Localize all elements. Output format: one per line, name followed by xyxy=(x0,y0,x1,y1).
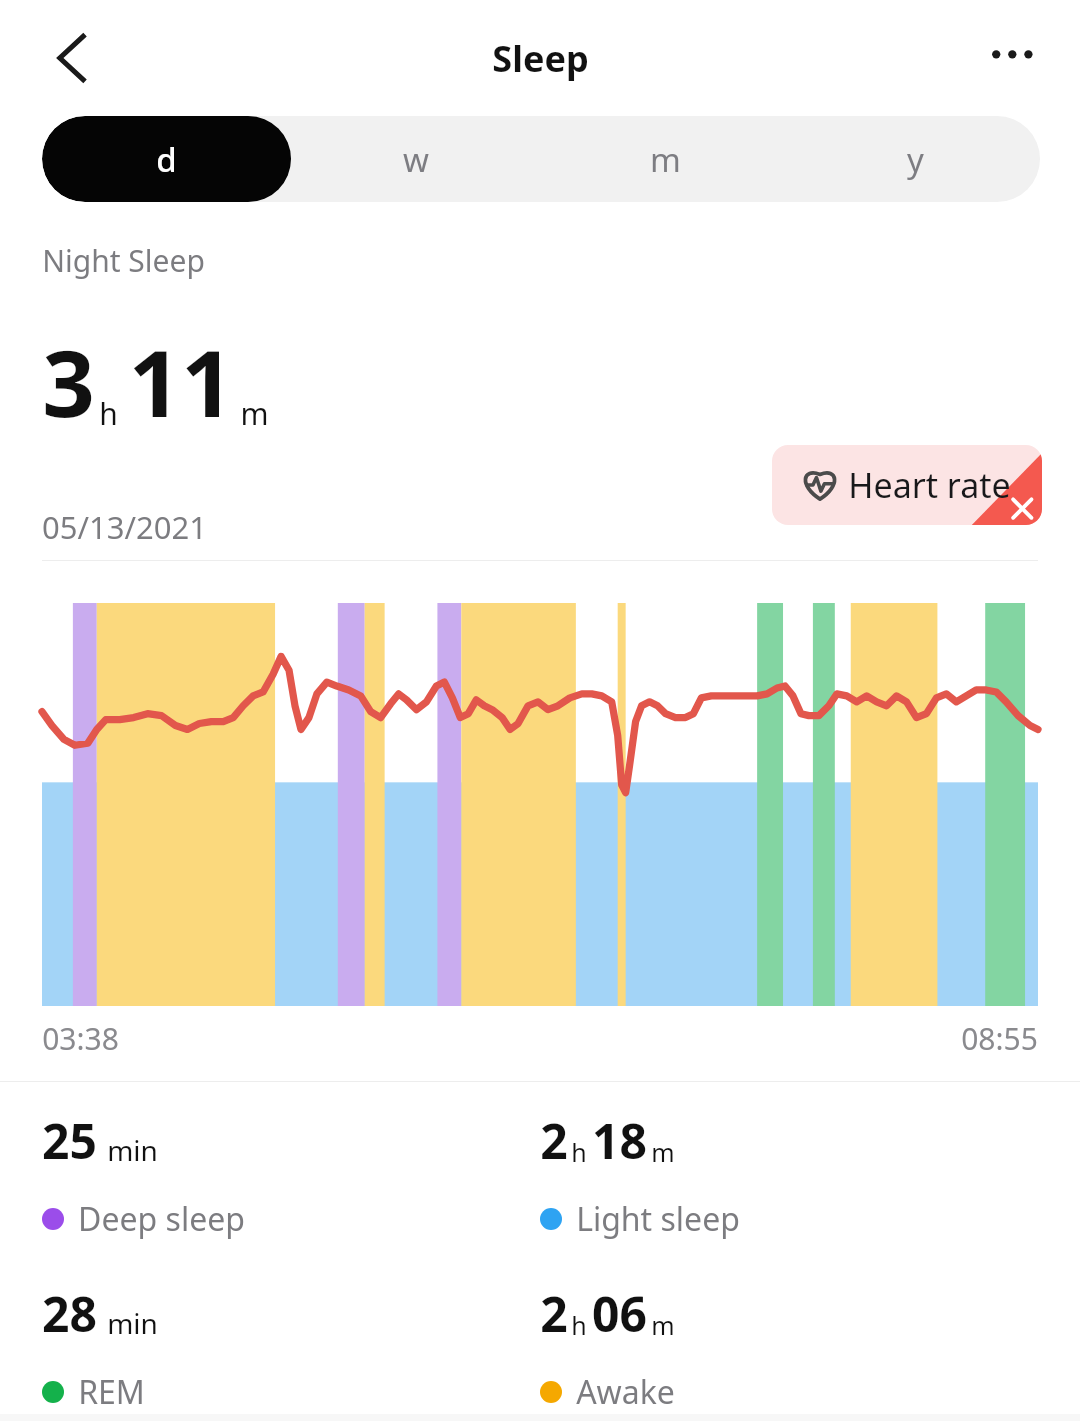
staticText: Heart rate xyxy=(848,462,1011,508)
button[interactable]: w xyxy=(291,116,540,202)
staticText: m xyxy=(240,393,269,434)
staticText: 3 xyxy=(42,319,95,444)
staticText: h xyxy=(99,393,118,434)
staticText: w xyxy=(403,137,429,182)
button[interactable]: 28 xyxy=(42,1281,540,1414)
staticText: Awake xyxy=(576,1370,675,1414)
button[interactable]: m xyxy=(540,116,790,202)
staticText: d xyxy=(156,137,177,182)
button[interactable]: y xyxy=(790,116,1040,202)
staticText: Light sleep xyxy=(576,1197,740,1241)
staticText: m xyxy=(650,137,681,182)
button[interactable]: Heart rate xyxy=(772,445,1042,525)
staticText: 05/13/2021 xyxy=(42,506,207,548)
button[interactable]: 2 xyxy=(540,1108,1038,1241)
staticText: REM xyxy=(78,1370,145,1414)
staticText: Night Sleep xyxy=(42,240,205,281)
staticText: m xyxy=(651,1135,675,1169)
staticText: 28 xyxy=(42,1281,97,1346)
staticText: min xyxy=(107,1304,158,1342)
staticText: y xyxy=(907,137,924,182)
button[interactable]: 2 xyxy=(540,1281,1038,1414)
button[interactable]: d xyxy=(42,116,291,202)
staticText: Deep sleep xyxy=(78,1197,245,1241)
staticText: 2 xyxy=(540,1281,568,1346)
button[interactable]: More options xyxy=(970,12,1062,104)
staticText: Sleep xyxy=(492,34,589,83)
staticText: 2 xyxy=(540,1108,568,1173)
staticText: 25 xyxy=(42,1108,97,1173)
staticText: 08:55 xyxy=(961,1018,1038,1059)
staticText: h xyxy=(571,1135,587,1169)
staticText: 11 xyxy=(128,319,234,444)
staticText: 06 xyxy=(592,1281,647,1346)
staticText: min xyxy=(107,1131,158,1169)
staticText: 03:38 xyxy=(42,1018,119,1059)
button[interactable]: Back xyxy=(22,12,114,104)
staticText: m xyxy=(651,1308,675,1342)
staticText: 18 xyxy=(592,1108,647,1173)
staticText: h xyxy=(571,1308,587,1342)
button[interactable]: 25 xyxy=(42,1108,540,1241)
